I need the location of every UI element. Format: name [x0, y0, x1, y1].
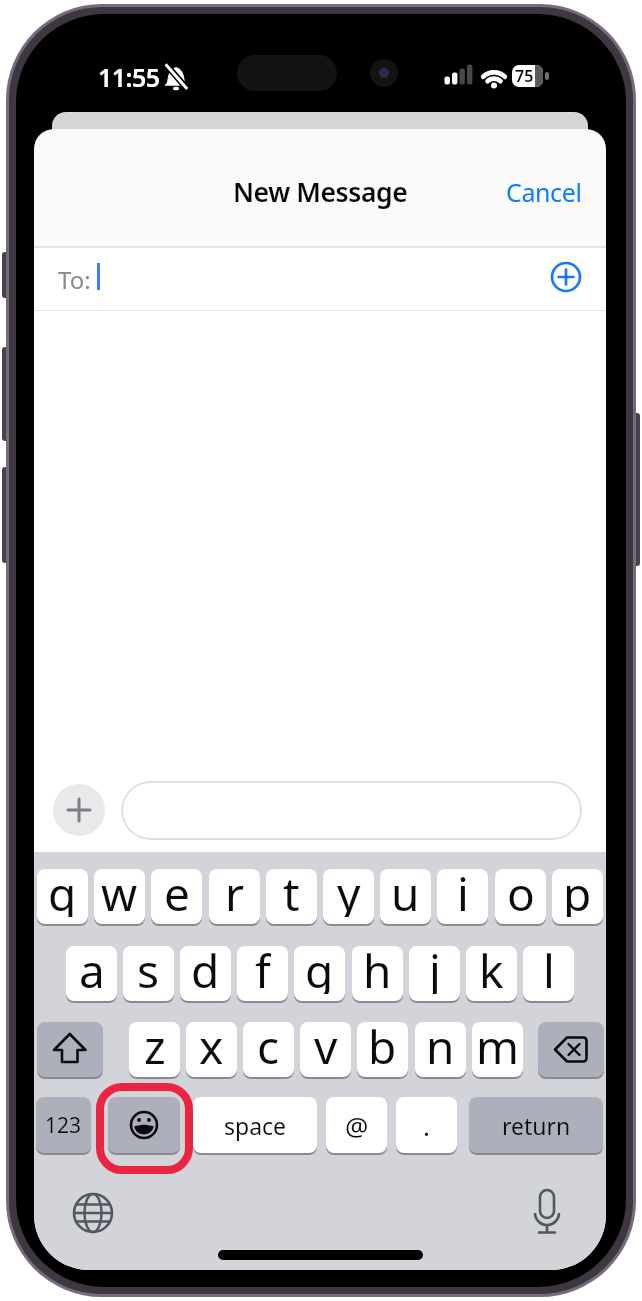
staticText: r: [225, 869, 244, 917]
staticText: 75: [515, 65, 534, 87]
staticText: z: [144, 1022, 166, 1070]
button[interactable]: return: [469, 1097, 603, 1153]
staticText: o: [507, 869, 535, 917]
button[interactable]: @: [326, 1097, 387, 1153]
staticText: f: [255, 946, 271, 994]
button[interactable]: l: [523, 946, 574, 1001]
button[interactable]: [538, 1022, 604, 1077]
button[interactable]: a: [66, 946, 117, 1001]
button[interactable]: r: [209, 869, 260, 924]
staticText: l: [543, 946, 555, 994]
staticText: b: [368, 1022, 397, 1070]
staticText: i: [457, 869, 469, 917]
button[interactable]: h: [352, 946, 403, 1001]
button[interactable]: i: [437, 869, 488, 924]
staticText: p: [563, 869, 592, 917]
button[interactable]: [37, 1022, 103, 1077]
staticText: m: [476, 1022, 520, 1070]
staticText: v: [314, 1022, 338, 1070]
button[interactable]: 123: [36, 1097, 91, 1153]
button[interactable]: c: [243, 1022, 294, 1077]
staticText: j: [429, 946, 441, 994]
staticText: t: [283, 869, 300, 917]
button[interactable]: .: [396, 1097, 457, 1153]
staticText: space: [224, 1110, 287, 1141]
button[interactable]: [53, 784, 105, 836]
button[interactable]: f: [237, 946, 288, 1001]
button[interactable]: u: [380, 869, 431, 924]
button[interactable]: v: [300, 1022, 351, 1077]
button[interactable]: n: [415, 1022, 466, 1077]
staticText: To:: [58, 263, 91, 296]
staticText: g: [305, 946, 334, 994]
button[interactable]: q: [37, 869, 88, 924]
staticText: 11:55: [98, 60, 160, 94]
button[interactable]: [548, 259, 584, 295]
staticText: @: [345, 1108, 369, 1143]
button[interactable]: Cancel: [494, 170, 582, 214]
button[interactable]: z: [129, 1022, 180, 1077]
button[interactable]: d: [180, 946, 231, 1001]
staticText: c: [257, 1022, 280, 1070]
button[interactable]: [526, 1188, 568, 1238]
staticText: w: [101, 869, 138, 917]
button[interactable]: b: [357, 1022, 408, 1077]
staticText: 123: [45, 1111, 82, 1140]
button[interactable]: j: [409, 946, 460, 1001]
staticText: s: [137, 946, 160, 994]
button[interactable]: p: [552, 869, 603, 924]
button[interactable]: g: [294, 946, 345, 1001]
staticText: q: [48, 869, 77, 917]
button[interactable]: k: [466, 946, 517, 1001]
button[interactable]: [72, 1192, 114, 1234]
button[interactable]: [108, 1097, 180, 1153]
staticText: a: [79, 946, 105, 994]
staticText: New Message: [233, 174, 408, 210]
staticText: k: [479, 946, 504, 994]
staticText: n: [426, 1022, 455, 1070]
button[interactable]: t: [266, 869, 317, 924]
button[interactable]: [121, 781, 582, 840]
button[interactable]: e: [151, 869, 202, 924]
button[interactable]: space: [193, 1097, 317, 1153]
button[interactable]: w: [94, 869, 145, 924]
button[interactable]: x: [186, 1022, 237, 1077]
button[interactable]: s: [123, 946, 174, 1001]
staticText: x: [199, 1022, 224, 1070]
staticText: u: [391, 869, 420, 917]
button[interactable]: m: [472, 1022, 523, 1077]
staticText: d: [191, 946, 220, 994]
staticText: e: [164, 869, 190, 917]
staticText: Cancel: [506, 175, 582, 209]
staticText: y: [337, 869, 361, 917]
button[interactable]: o: [495, 869, 546, 924]
staticText: return: [502, 1110, 571, 1141]
button[interactable]: y: [323, 869, 374, 924]
staticText: h: [363, 946, 392, 994]
staticText: .: [423, 1108, 430, 1143]
